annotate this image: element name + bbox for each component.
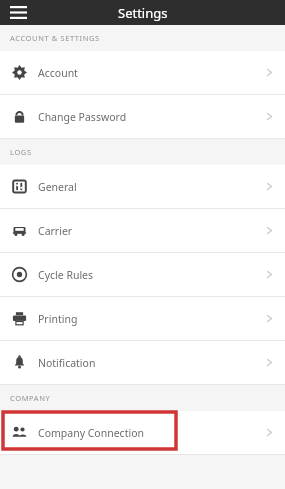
staticText: General: [38, 180, 77, 194]
staticText: Carrier: [38, 224, 73, 238]
staticText: Company Connection: [38, 426, 144, 440]
staticText: ACCOUNT & SETTINGS: [10, 33, 100, 43]
staticText: Settings: [118, 4, 168, 22]
button[interactable]: Open navigation menu: [0, 0, 36, 25]
staticText: Change Password: [38, 110, 127, 124]
staticText: Printing: [38, 312, 78, 326]
staticText: Notification: [38, 356, 96, 370]
button[interactable]: Carrier: [0, 209, 285, 252]
button[interactable]: Notification: [0, 341, 285, 384]
button[interactable]: Cycle Rules: [0, 253, 285, 296]
staticText: Account: [38, 66, 78, 80]
staticText: COMPANY: [10, 393, 51, 403]
button[interactable]: Change Password: [0, 95, 285, 138]
staticText: LOGS: [10, 147, 32, 157]
button[interactable]: Printing: [0, 297, 285, 340]
staticText: Cycle Rules: [38, 268, 94, 282]
button[interactable]: General: [0, 165, 285, 208]
button[interactable]: Account: [0, 51, 285, 94]
button[interactable]: Company Connection: [0, 411, 285, 454]
